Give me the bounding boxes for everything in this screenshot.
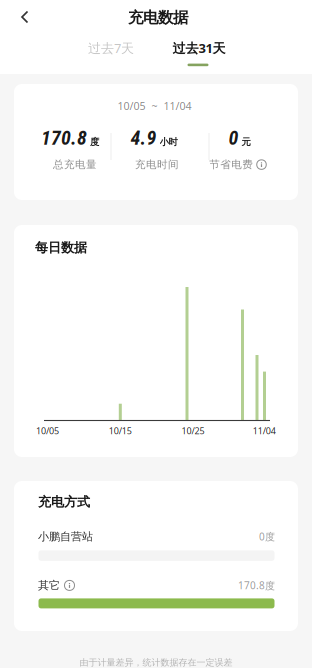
staticText: 11/04 xyxy=(253,425,276,437)
staticText: 过去7天 xyxy=(88,39,134,57)
staticText: 10/05 ~ 11/04 xyxy=(117,98,191,113)
button[interactable]: 节省电费说明 xyxy=(209,158,267,171)
staticText: 其它 xyxy=(38,578,60,592)
staticText: 170.8度 xyxy=(238,579,275,592)
button[interactable]: 过去7天 xyxy=(71,37,151,71)
staticText: 总充电量 xyxy=(53,158,97,171)
staticText: 10/05 xyxy=(36,425,59,437)
staticText: 过去31天 xyxy=(172,39,225,57)
staticText: 元 xyxy=(241,136,250,148)
staticText: 4.9 xyxy=(130,126,156,150)
staticText: 每日数据 xyxy=(35,239,87,256)
staticText: 小时 xyxy=(159,136,177,148)
button[interactable]: 过去31天 xyxy=(159,37,239,71)
staticText: 节省电费 xyxy=(209,158,253,171)
staticText: 充电时间 xyxy=(135,158,179,171)
staticText: 由于计量差异，统计数据存在一定误差 xyxy=(79,657,232,668)
staticText: 度 xyxy=(90,136,99,148)
staticText: 0 xyxy=(228,126,238,150)
staticText: 10/15 xyxy=(109,425,132,437)
staticText: 充电方式 xyxy=(38,494,90,510)
staticText: 小鹏自营站 xyxy=(38,530,93,544)
button[interactable]: 其它充电说明 xyxy=(64,580,75,591)
staticText: 充电数据 xyxy=(128,8,188,27)
staticText: 0度 xyxy=(259,530,275,543)
button[interactable]: 返回 xyxy=(6,1,42,33)
staticText: 170.8 xyxy=(41,126,87,150)
staticText: 10/25 xyxy=(181,425,204,437)
